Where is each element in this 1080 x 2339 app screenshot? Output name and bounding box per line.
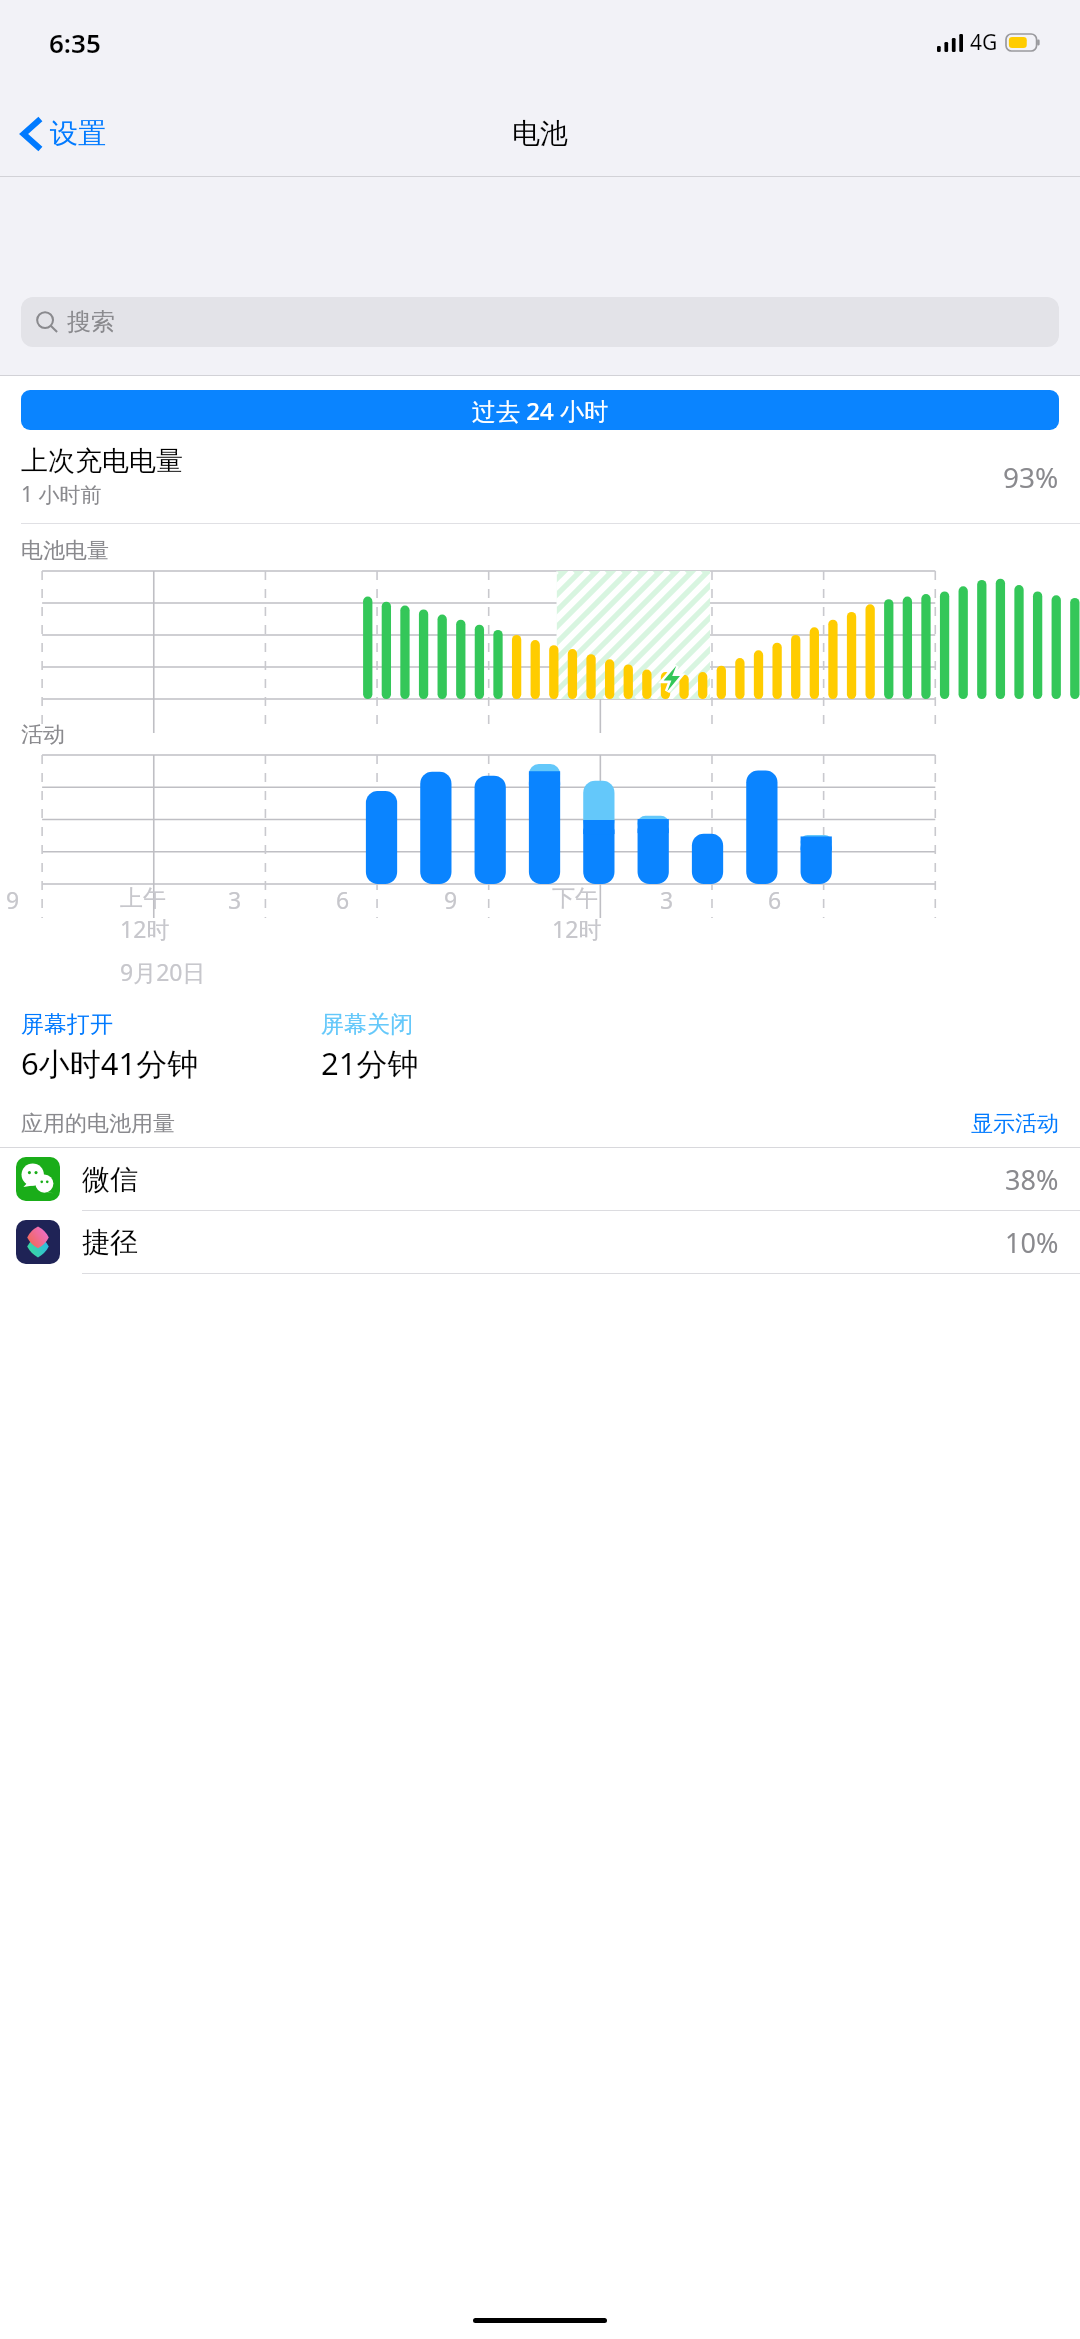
staticText: 3 (660, 884, 674, 915)
staticText: 6:35 (49, 25, 101, 60)
staticText: 上午 (120, 884, 166, 913)
staticText: 93% (1003, 458, 1059, 496)
staticText: 1 小时前 (21, 480, 102, 509)
staticText: 12时 (120, 913, 170, 944)
staticText: 4G (970, 28, 998, 57)
staticText: 电池电量 (21, 537, 109, 565)
button[interactable]: 上次充电电量 (21, 444, 1059, 509)
staticText: 3 (228, 884, 242, 915)
staticText: 捷径 (82, 1225, 138, 1260)
staticText: 21分钟 (321, 1042, 419, 1084)
staticText: 38% (1005, 1161, 1059, 1198)
staticText: 9 (444, 884, 458, 915)
staticText: 过去 24 小时 (472, 394, 608, 427)
staticText: 微信 (82, 1162, 138, 1197)
staticText: 显示活动 (971, 1110, 1059, 1138)
button[interactable]: 微信 (0, 1148, 1080, 1210)
button[interactable]: 屏幕关闭 (321, 1010, 419, 1084)
button[interactable]: Back (0, 106, 122, 161)
staticText: 设置 (50, 116, 106, 151)
staticText: 屏幕关闭 (321, 1010, 413, 1039)
staticText: 活动 (21, 721, 65, 749)
button[interactable]: 过去 24 小时 (21, 390, 1059, 430)
staticText: 屏幕打开 (21, 1010, 113, 1039)
staticText: 电池 (512, 116, 568, 151)
staticText: 应用的电池用量 (21, 1110, 175, 1138)
button[interactable]: 搜索 (21, 297, 1059, 347)
staticText: 9月20日 (120, 956, 206, 987)
staticText: 上次充电电量 (21, 444, 183, 478)
staticText: 12时 (552, 913, 602, 944)
button[interactable]: 屏幕打开 (21, 1010, 321, 1084)
staticText: 6小时41分钟 (21, 1042, 199, 1084)
staticText: 6 (336, 884, 350, 915)
staticText: 搜索 (67, 307, 115, 337)
staticText: 9 (6, 884, 20, 915)
other: Back (22, 117, 42, 151)
staticText: 6 (768, 884, 782, 915)
staticText: 10% (1005, 1224, 1059, 1261)
button[interactable]: 显示活动 (971, 1110, 1059, 1138)
staticText: 下午 (552, 884, 598, 913)
button[interactable]: 捷径 (0, 1211, 1080, 1273)
